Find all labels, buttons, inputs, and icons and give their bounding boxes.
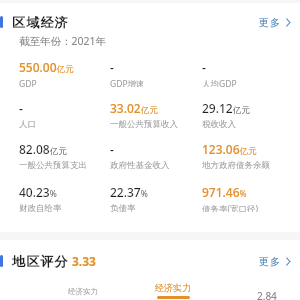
staticText: 截至年份：2021年 [19, 34, 107, 48]
staticText: - [19, 100, 23, 116]
staticText: 更多 [259, 16, 281, 29]
button[interactable]: 29.12亿元 [202, 100, 290, 128]
staticText: 更多 [259, 255, 281, 268]
staticText: 地方政府债务余额 [202, 160, 270, 169]
staticText: 82.08亿元 [19, 141, 67, 157]
button[interactable]: 82.08亿元 [19, 141, 107, 169]
staticText: 一般公共预算收入 [110, 119, 178, 128]
button[interactable]: - [110, 141, 198, 169]
button[interactable]: - [19, 100, 107, 128]
staticText: 3.33 [72, 253, 96, 269]
button[interactable]: - [202, 59, 290, 87]
staticText: 22.37% [110, 184, 148, 200]
staticText: GDP [19, 78, 37, 87]
staticText: GDP增速 [110, 78, 145, 87]
staticText: 区域经济 [12, 14, 69, 30]
button[interactable]: 40.23% [19, 184, 107, 212]
staticText: 地区评分 [12, 253, 69, 269]
staticText: 经济实力 [68, 287, 98, 296]
staticText: 人均GDP [202, 78, 237, 87]
button[interactable]: 22.37% [110, 184, 198, 212]
staticText: 40.23% [19, 184, 57, 200]
staticText: 政府性基金收入 [110, 160, 170, 169]
staticText: 2.84 [257, 289, 277, 300]
staticText: - [110, 141, 114, 157]
staticText: 一般公共预算支出 [19, 160, 87, 169]
button[interactable]: 33.02亿元 [110, 100, 198, 128]
staticText: 负债率 [110, 203, 136, 212]
button[interactable]: 971.46% [202, 184, 290, 212]
staticText: 33.02亿元 [110, 100, 158, 116]
staticText: - [110, 59, 114, 75]
staticText: 税收收入 [202, 119, 236, 128]
staticText: 财政自给率 [19, 203, 62, 212]
button[interactable]: 经济实力 [146, 279, 200, 300]
button[interactable]: 550.00亿元 [19, 59, 107, 87]
staticText: 550.00亿元 [19, 59, 74, 75]
button[interactable]: 经济实力 [52, 280, 110, 300]
staticText: 29.12亿元 [202, 100, 250, 116]
button[interactable]: 更多 [259, 16, 291, 29]
staticText: 债务率(宽口径) [202, 203, 259, 212]
staticText: 经济实力 [155, 282, 191, 293]
button[interactable]: 123.06亿元 [202, 141, 290, 169]
staticText: 123.06亿元 [202, 141, 257, 157]
button[interactable]: 更多 [259, 255, 291, 268]
button[interactable]: - [110, 59, 198, 87]
staticText: - [202, 59, 206, 75]
staticText: 人口 [19, 119, 36, 128]
staticText: 971.46% [202, 184, 247, 200]
